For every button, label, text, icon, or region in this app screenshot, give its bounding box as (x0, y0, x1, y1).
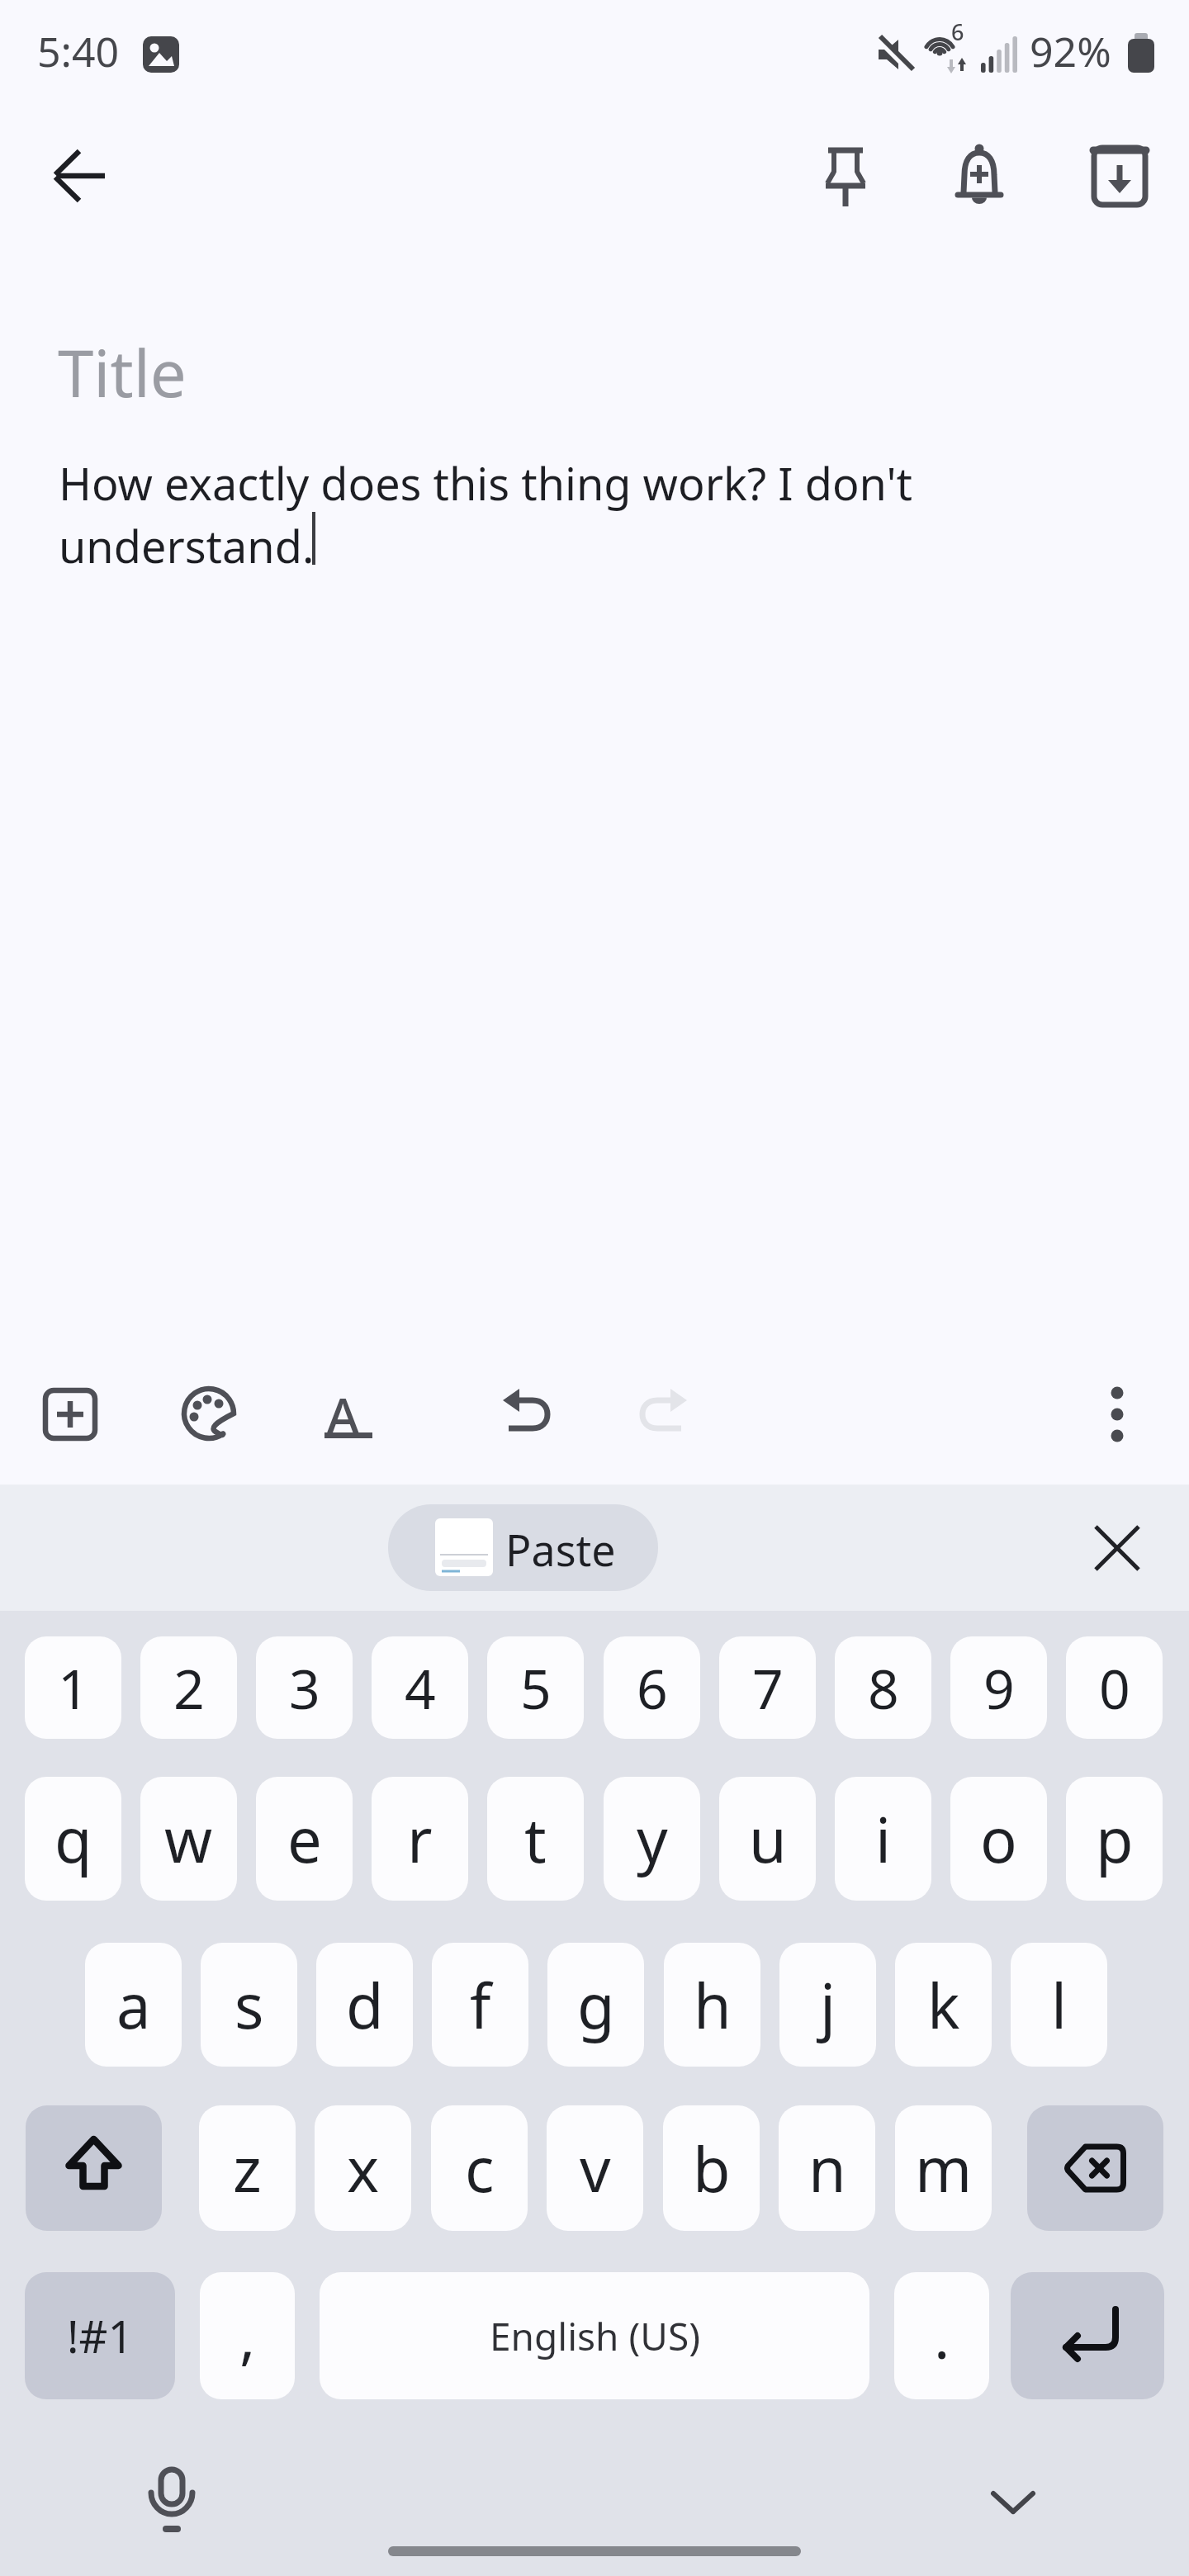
staticText: j (820, 1963, 836, 2047)
staticText: s (234, 1963, 264, 2047)
staticText: m (915, 2127, 973, 2210)
staticText: a (116, 1963, 151, 2047)
button[interactable]: o (950, 1777, 1047, 1901)
staticText: f (470, 1963, 491, 2047)
button[interactable]: !#1 (25, 2272, 175, 2399)
staticText: 7 (752, 1650, 784, 1725)
button[interactable]: i (835, 1777, 931, 1901)
button[interactable]: f (432, 1943, 528, 2067)
staticText: r (407, 1797, 433, 1881)
button[interactable]: z (199, 2105, 296, 2231)
staticText: 2 (173, 1650, 205, 1725)
button[interactable]: 1 (25, 1636, 121, 1739)
button[interactable] (43, 1387, 97, 1442)
staticText: c (465, 2127, 495, 2210)
button[interactable]: a (85, 1943, 182, 2067)
button[interactable]: d (316, 1943, 413, 2067)
button[interactable] (320, 2272, 869, 2399)
button[interactable] (634, 1384, 692, 1442)
staticText: 6 (951, 17, 964, 47)
button[interactable] (1088, 144, 1151, 208)
button[interactable]: j (779, 1943, 876, 2067)
button[interactable] (51, 146, 111, 206)
button[interactable]: 3 (256, 1636, 353, 1739)
button[interactable] (1027, 2105, 1163, 2231)
staticText: 0 (1099, 1650, 1130, 1725)
button[interactable]: x (315, 2105, 411, 2231)
button[interactable] (142, 2465, 201, 2539)
button[interactable]: v (547, 2105, 643, 2231)
button[interactable]: 5 (487, 1636, 584, 1739)
button[interactable]: g (547, 1943, 644, 2067)
button[interactable]: t (487, 1777, 584, 1901)
button[interactable] (1011, 2272, 1164, 2399)
button[interactable]: . (894, 2272, 989, 2399)
button[interactable] (988, 2482, 1039, 2525)
staticText: 1 (58, 1650, 89, 1725)
staticText: x (347, 2127, 380, 2210)
button[interactable]: q (25, 1777, 121, 1901)
staticText: q (54, 1797, 92, 1881)
button[interactable]: 0 (1066, 1636, 1163, 1739)
button[interactable]: p (1066, 1777, 1163, 1901)
staticText: g (577, 1963, 615, 2047)
button[interactable]: 2 (140, 1636, 237, 1739)
button[interactable] (811, 142, 880, 211)
staticText: w (164, 1797, 213, 1881)
staticText: k (927, 1963, 960, 2047)
staticText: Paste (505, 1520, 616, 1579)
button[interactable] (498, 1384, 556, 1442)
button[interactable]: 9 (950, 1636, 1047, 1739)
button[interactable]: u (719, 1777, 816, 1901)
staticText: d (346, 1963, 384, 2047)
staticText: 92% (1030, 23, 1111, 79)
button[interactable]: h (664, 1943, 760, 2067)
button[interactable] (26, 2105, 162, 2231)
staticText: b (693, 2127, 731, 2210)
button[interactable]: e (256, 1777, 353, 1901)
staticText: 8 (868, 1650, 899, 1725)
button[interactable]: y (604, 1777, 700, 1901)
button[interactable]: Paste (388, 1504, 658, 1591)
button[interactable]: s (201, 1943, 297, 2067)
staticText: u (749, 1797, 787, 1881)
button[interactable]: m (895, 2105, 992, 2231)
staticText: . (934, 2295, 950, 2376)
staticText: A (326, 1380, 360, 1447)
button[interactable]: , (200, 2272, 295, 2399)
button[interactable] (1090, 1379, 1144, 1450)
button[interactable] (181, 1385, 237, 1442)
button[interactable]: n (779, 2105, 875, 2231)
staticText: Title (58, 329, 187, 416)
staticText: 4 (405, 1650, 436, 1725)
button[interactable]: l (1011, 1943, 1107, 2067)
staticText: t (524, 1797, 547, 1881)
staticText: v (580, 2127, 611, 2210)
staticText: l (1051, 1963, 1068, 2047)
button[interactable]: A (320, 1380, 377, 1447)
button[interactable] (945, 140, 1014, 210)
button[interactable] (1092, 1522, 1143, 1574)
staticText: i (875, 1797, 892, 1881)
staticText: English (US) (490, 2310, 700, 2362)
staticText: How exactly does this thing work? I don'… (59, 452, 913, 576)
staticText: !#1 (67, 2305, 134, 2366)
staticText: p (1096, 1797, 1134, 1881)
button[interactable]: 8 (835, 1636, 931, 1739)
button[interactable]: 6 (604, 1636, 700, 1739)
staticText: h (694, 1963, 732, 2047)
staticText: 3 (289, 1650, 320, 1725)
button[interactable]: b (663, 2105, 760, 2231)
button[interactable]: 4 (372, 1636, 468, 1739)
staticText: 5 (520, 1650, 552, 1725)
staticText: z (233, 2127, 262, 2210)
button[interactable]: r (372, 1777, 468, 1901)
button[interactable]: 7 (719, 1636, 816, 1739)
button[interactable]: k (895, 1943, 992, 2067)
button[interactable]: w (140, 1777, 237, 1901)
staticText: 6 (637, 1650, 668, 1725)
staticText: y (637, 1797, 668, 1881)
staticText: 5:40 (37, 23, 120, 79)
staticText: o (980, 1797, 1017, 1881)
button[interactable]: c (431, 2105, 528, 2231)
